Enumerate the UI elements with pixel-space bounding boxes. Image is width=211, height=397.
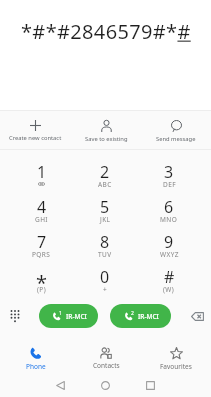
staticText: IR-MCI bbox=[66, 312, 87, 321]
staticText: Create new contact bbox=[9, 134, 62, 142]
staticText: 5 bbox=[100, 196, 110, 218]
button[interactable]: 9 bbox=[137, 223, 201, 245]
staticText: (W) bbox=[163, 285, 175, 294]
button[interactable]: 6 bbox=[137, 188, 201, 210]
staticText: 4 bbox=[37, 196, 47, 218]
staticText: 2 bbox=[100, 161, 110, 183]
staticText: Phone bbox=[26, 362, 46, 371]
staticText: ABC bbox=[98, 180, 112, 189]
staticText: DEF bbox=[163, 180, 176, 189]
staticText: Contacts bbox=[93, 361, 120, 370]
staticText: Send message bbox=[156, 135, 196, 143]
button[interactable]: Favourites bbox=[141, 336, 211, 373]
button[interactable]: 4 bbox=[10, 188, 73, 210]
button[interactable]: Delete bbox=[186, 304, 209, 328]
button[interactable]: 7 bbox=[10, 223, 73, 245]
staticText: # bbox=[164, 266, 175, 288]
staticText: GHI bbox=[35, 215, 48, 224]
button[interactable]: 8 bbox=[73, 223, 137, 245]
staticText: 1 bbox=[59, 310, 62, 317]
staticText: PQRS bbox=[32, 250, 51, 259]
staticText: Save to existing bbox=[85, 135, 128, 143]
button[interactable]: Dialpad bbox=[3, 304, 26, 328]
button[interactable]: Recents bbox=[139, 374, 162, 397]
button[interactable]: 5 bbox=[73, 188, 137, 210]
staticText: IR-MCI bbox=[138, 312, 159, 321]
button[interactable]: Create new contact bbox=[0, 111, 71, 149]
staticText: TUV bbox=[98, 250, 112, 259]
button[interactable]: Save to existing bbox=[71, 111, 141, 149]
staticText: 0 bbox=[100, 266, 110, 288]
staticText: MNO bbox=[160, 215, 178, 224]
staticText: * bbox=[36, 269, 48, 296]
button[interactable]: 1 bbox=[39, 304, 98, 328]
staticText: (P) bbox=[37, 285, 47, 294]
staticText: 8 bbox=[100, 231, 110, 253]
button[interactable]: 0 bbox=[73, 258, 137, 280]
staticText: WXYZ bbox=[160, 250, 179, 259]
button[interactable]: * bbox=[10, 258, 73, 285]
staticText: *#*#2846579#*# bbox=[21, 18, 191, 45]
staticText: 7 bbox=[37, 231, 47, 253]
button[interactable]: Send message bbox=[141, 111, 211, 149]
staticText: 1 bbox=[37, 161, 47, 183]
button[interactable]: 2 bbox=[73, 153, 137, 175]
button[interactable]: 2 bbox=[110, 304, 171, 328]
staticText: 2 bbox=[131, 310, 134, 317]
button[interactable]: Home bbox=[94, 374, 117, 397]
staticText: JKL bbox=[100, 215, 111, 224]
staticText: Favourites bbox=[160, 362, 192, 371]
staticText: + bbox=[103, 285, 108, 294]
button[interactable]: Contacts bbox=[71, 336, 141, 373]
staticText: 9 bbox=[164, 231, 174, 253]
button[interactable]: # bbox=[137, 258, 201, 280]
staticText: 6 bbox=[164, 196, 174, 218]
button[interactable]: Phone bbox=[0, 336, 71, 373]
button[interactable]: 3 bbox=[137, 153, 201, 175]
button[interactable]: 1 bbox=[10, 153, 73, 175]
staticText: 3 bbox=[164, 161, 174, 183]
button[interactable]: Back bbox=[49, 374, 72, 397]
